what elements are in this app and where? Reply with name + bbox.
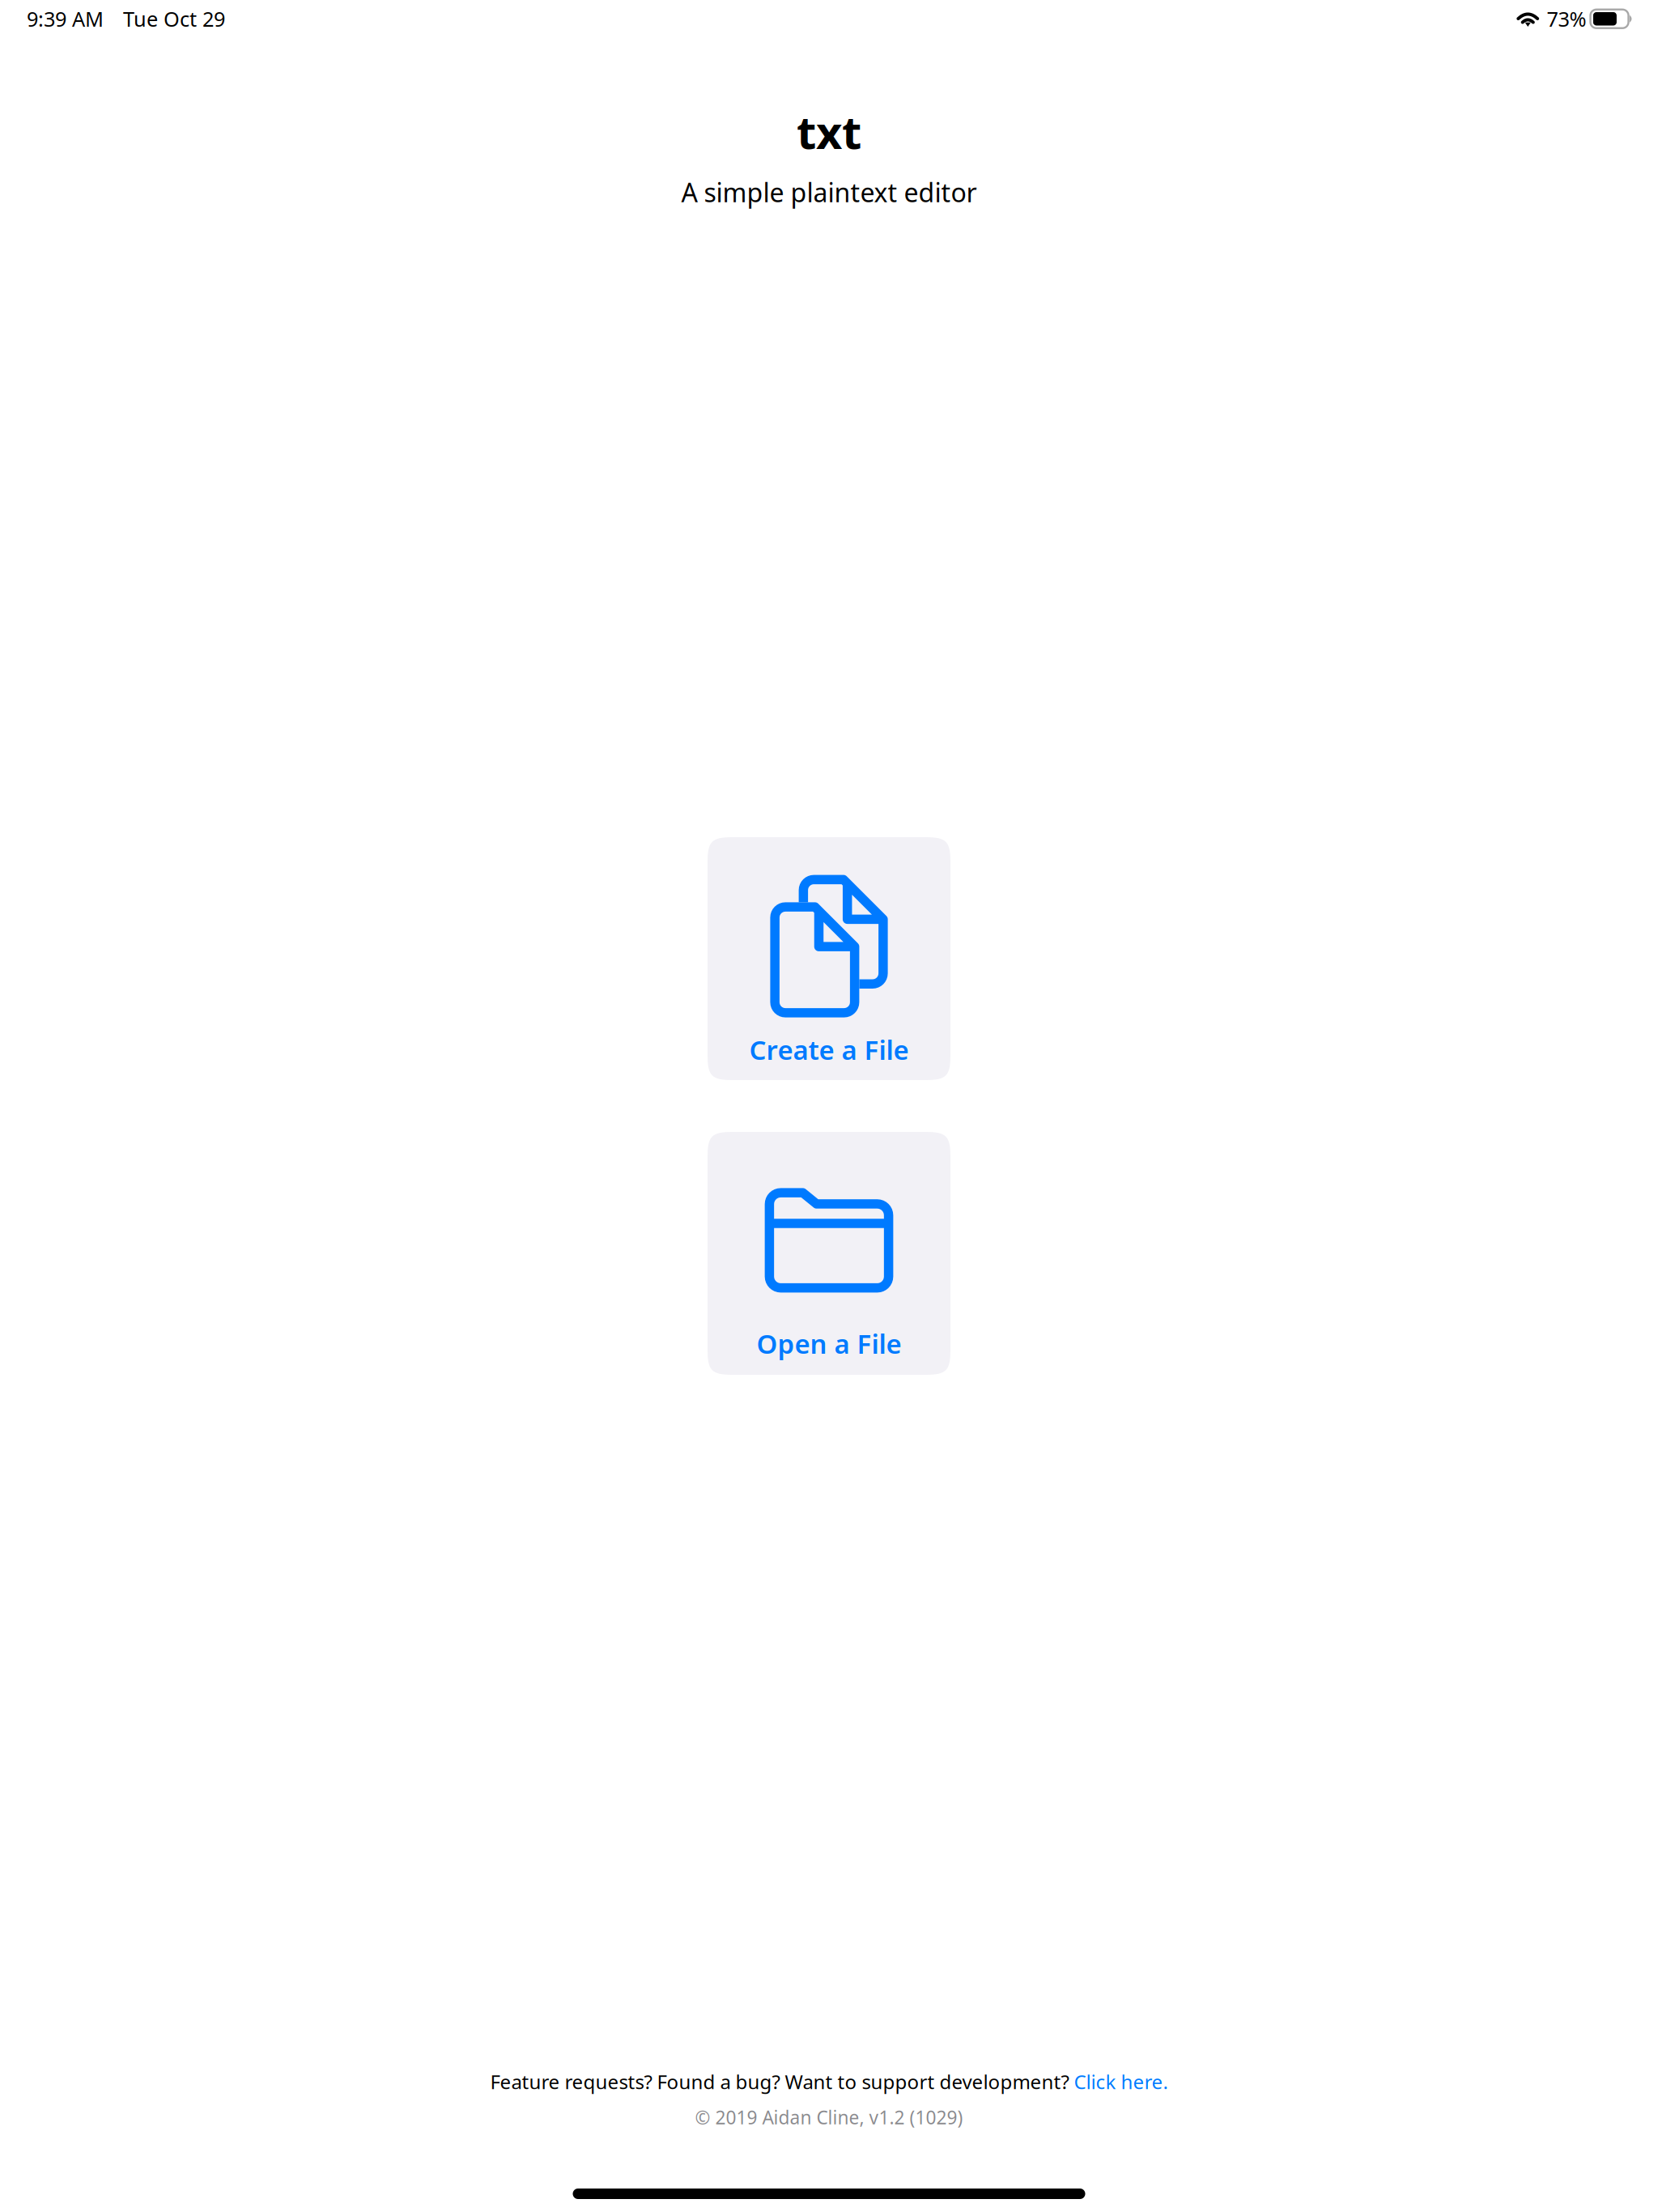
staticText: Click here. <box>1074 2069 1168 2095</box>
staticText: Open a File <box>757 1325 901 1362</box>
staticText: txt <box>797 101 861 161</box>
button[interactable]: Open a File <box>708 1132 950 1375</box>
staticText: 9:39 AM <box>27 5 104 33</box>
staticText: © 2019 Aidan Cline, v1.2 (1029) <box>695 2105 963 2129</box>
staticText: Create a File <box>749 1032 909 1068</box>
staticText: A simple plaintext editor <box>681 175 977 209</box>
staticText: Feature requests? Found a bug? Want to s… <box>490 2069 1074 2095</box>
staticText: 73% <box>1547 5 1586 33</box>
button[interactable]: Click here. <box>1074 2069 1168 2095</box>
staticText: Tue Oct 29 <box>123 5 225 33</box>
button[interactable]: Create a File <box>708 837 950 1080</box>
